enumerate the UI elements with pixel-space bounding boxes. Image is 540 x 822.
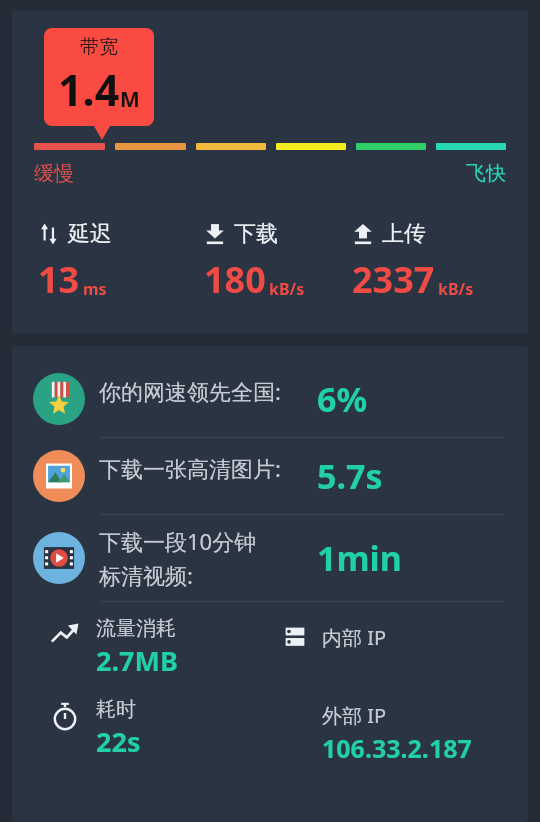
other: Photo download — [33, 450, 85, 502]
button[interactable]: Data usage — [12, 616, 178, 679]
staticText: 缓慢 — [34, 161, 74, 186]
staticText: 上传 — [382, 220, 426, 248]
other: Upload — [352, 223, 374, 245]
staticText: 飞快 — [466, 161, 506, 186]
staticText: kB/s — [269, 278, 305, 300]
button[interactable]: Elapsed time — [12, 697, 141, 760]
other: Ranking — [33, 373, 85, 425]
staticText: 2337 — [352, 255, 435, 304]
staticText: 6% — [317, 376, 368, 422]
staticText: 2.7MB — [96, 642, 178, 679]
staticText: 下载 — [234, 220, 278, 248]
button[interactable]: Photo download — [12, 438, 528, 514]
button[interactable]: Latency — [38, 220, 204, 304]
button[interactable]: 带宽 — [44, 28, 154, 126]
other: Internal IP — [282, 624, 308, 650]
other: Video download — [33, 532, 85, 584]
staticText: 5.7s — [317, 453, 383, 499]
button[interactable]: Video download — [12, 515, 528, 601]
staticText: 延迟 — [68, 220, 112, 248]
other: Latency — [38, 223, 60, 245]
button[interactable]: Internal IP — [282, 616, 387, 658]
staticText: M — [120, 85, 140, 114]
staticText: 你的网速领先全国: — [99, 376, 281, 406]
other: Elapsed time — [50, 701, 80, 731]
staticText: 内部 IP — [322, 624, 387, 651]
staticText: 流量消耗 — [96, 616, 176, 641]
button[interactable]: Download — [204, 220, 352, 304]
staticText: 22s — [96, 723, 141, 760]
button[interactable]: 外部 IP — [322, 702, 472, 765]
button[interactable]: Ranking — [12, 361, 528, 437]
staticText: kB/s — [438, 278, 474, 300]
staticText: 下载一张高清图片: — [99, 453, 281, 483]
staticText: 标清视频: — [99, 560, 193, 590]
staticText: 180 — [204, 255, 266, 304]
staticText: ms — [83, 278, 107, 300]
staticText: 1min — [317, 535, 402, 581]
staticText: 外部 IP — [322, 702, 387, 729]
other: Data usage — [50, 620, 80, 650]
staticText: 106.33.2.187 — [322, 731, 472, 765]
staticText: 下载一段10分钟 — [99, 526, 257, 556]
staticText: 带宽 — [80, 35, 118, 59]
other: Download — [204, 223, 226, 245]
staticText: 耗时 — [96, 697, 136, 722]
button[interactable]: Upload — [352, 220, 512, 304]
staticText: 13 — [38, 255, 80, 304]
staticText: 1.4 — [58, 60, 120, 119]
